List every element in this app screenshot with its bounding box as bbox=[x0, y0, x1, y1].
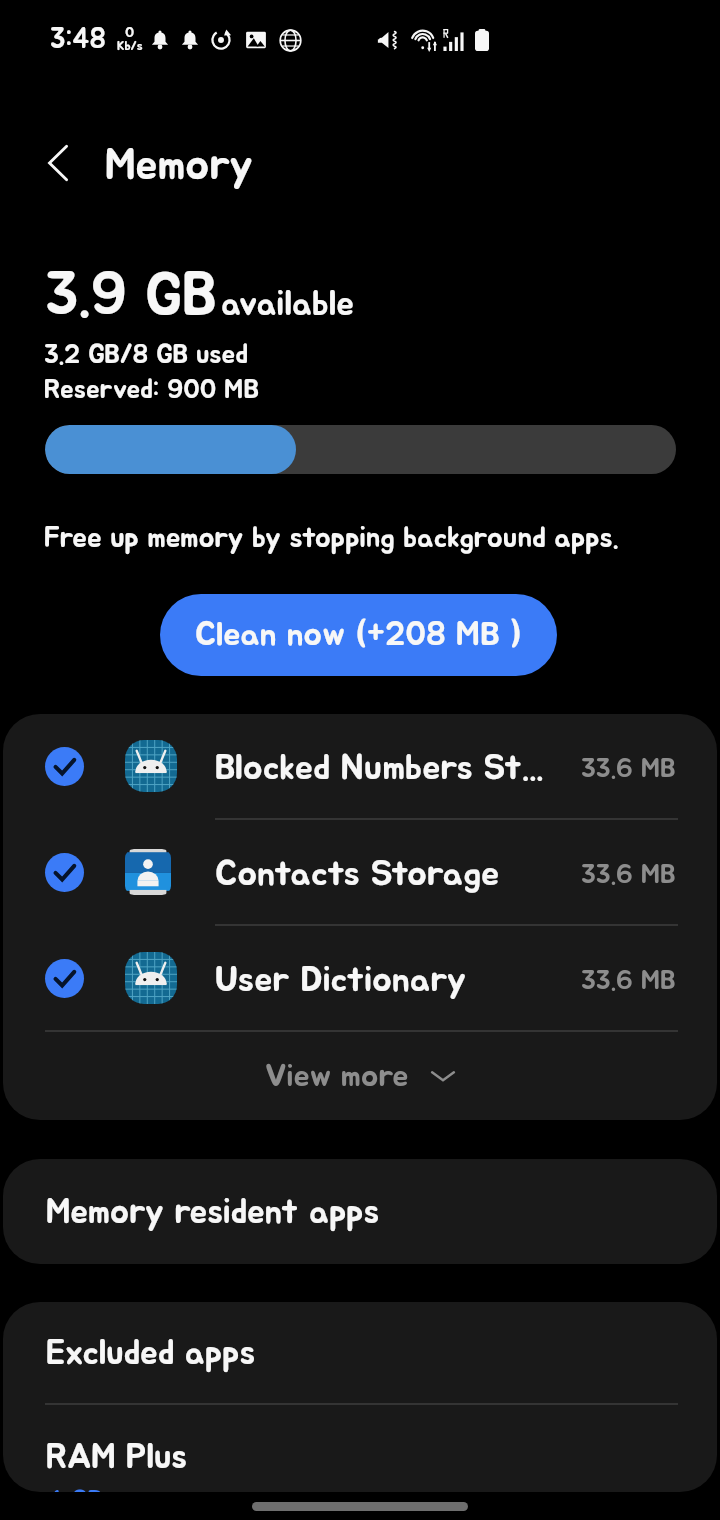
staticText: View more bbox=[265, 1060, 409, 1092]
button[interactable]: Clean now (+208 MB ) bbox=[160, 594, 557, 676]
button[interactable]: Excluded apps bbox=[3, 1302, 717, 1403]
staticText: Reserved: 900 MB bbox=[44, 376, 259, 403]
staticText: 4 GB bbox=[46, 1487, 103, 1492]
button[interactable]: Back bbox=[33, 137, 85, 189]
staticText: 0 bbox=[125, 25, 135, 40]
staticText: Free up memory by stopping background ap… bbox=[44, 524, 619, 553]
staticText: Contacts Storage bbox=[215, 856, 500, 892]
staticText: Memory bbox=[105, 144, 254, 188]
staticText: available bbox=[221, 287, 355, 322]
staticText: Clean now (+208 MB ) bbox=[195, 618, 522, 652]
staticText: Kb/s bbox=[117, 40, 143, 53]
staticText: Excluded apps bbox=[46, 1336, 256, 1371]
button[interactable]: User Dictionary bbox=[3, 926, 717, 1030]
staticText: 33.6 MB bbox=[581, 967, 676, 994]
button[interactable]: RAM Plus bbox=[3, 1405, 717, 1492]
staticText: Memory resident apps bbox=[46, 1195, 380, 1230]
staticText: 3.9 GB bbox=[45, 265, 217, 326]
staticText: 33.6 MB bbox=[581, 755, 676, 782]
staticText: 33.6 MB bbox=[581, 861, 676, 888]
staticText: 3.2 GB/8 GB used bbox=[44, 341, 248, 368]
button[interactable]: View more bbox=[3, 1032, 717, 1120]
button[interactable]: Contacts Storage bbox=[3, 820, 717, 924]
staticText: RAM Plus bbox=[46, 1440, 188, 1475]
staticText: 3:48 bbox=[50, 26, 106, 54]
staticText: Blocked Numbers St... bbox=[215, 750, 544, 786]
button[interactable]: Blocked Numbers St... bbox=[3, 714, 717, 818]
button[interactable]: Memory resident apps bbox=[3, 1159, 717, 1264]
staticText: User Dictionary bbox=[215, 962, 467, 998]
